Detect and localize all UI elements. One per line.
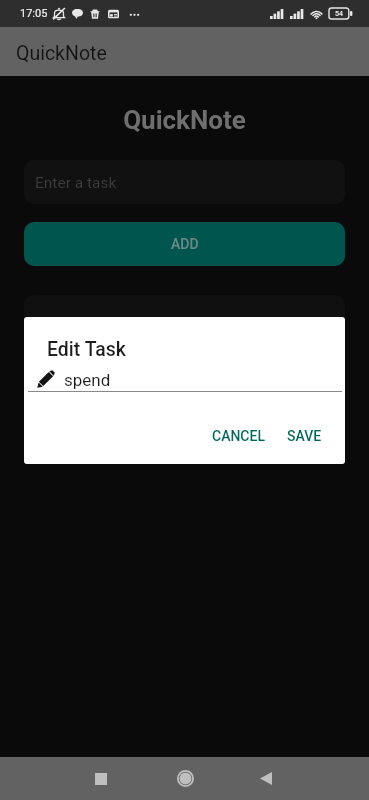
staticText: 54 (335, 10, 343, 18)
button[interactable]: Recent apps (79, 757, 123, 800)
button[interactable]: ADD (24, 222, 345, 266)
staticText: 17:05 (20, 7, 48, 20)
staticText: ADD (171, 236, 199, 252)
button[interactable]: Enter a task (24, 160, 345, 204)
button[interactable]: SAVE (279, 423, 330, 449)
staticText: spend (64, 370, 111, 390)
staticText: QuickNote (16, 42, 107, 65)
staticText: Enter a task (35, 174, 117, 192)
staticText: Edit Task (47, 338, 127, 361)
button[interactable] (24, 295, 345, 357)
button[interactable]: Back (244, 757, 288, 800)
staticText: SAVE (287, 428, 322, 444)
staticText: QuickNote (0, 105, 369, 135)
staticText: CANCEL (212, 428, 265, 444)
button[interactable]: Home (163, 757, 207, 800)
button[interactable]: CANCEL (204, 423, 273, 449)
